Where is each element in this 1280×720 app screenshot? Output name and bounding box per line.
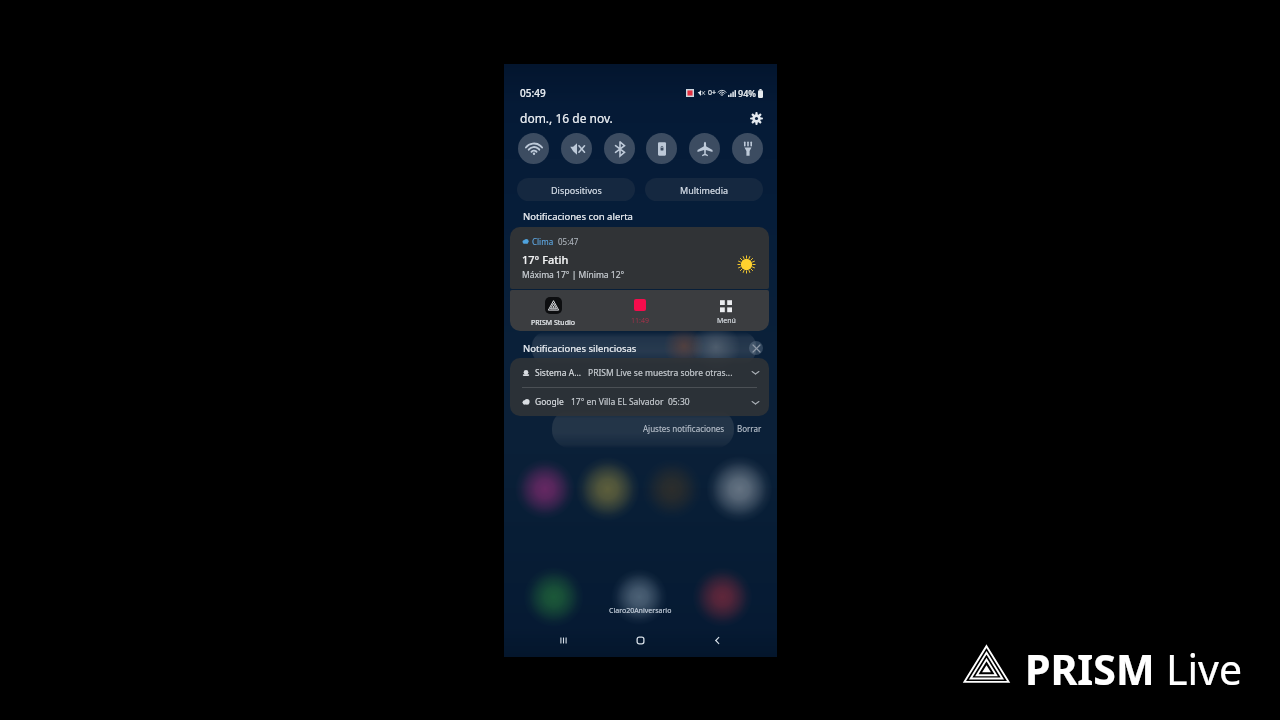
staticText: Notificaciones con alerta <box>523 210 633 223</box>
staticText: Multimedia <box>680 184 729 196</box>
button[interactable]: Settings <box>747 109 765 127</box>
button[interactable]: Sound off <box>561 133 592 164</box>
button[interactable]: Rotation lock <box>646 133 677 164</box>
button[interactable]: Google <box>522 388 760 416</box>
staticText: Máxima 17° | Mínima 12° <box>522 269 625 281</box>
button[interactable]: Back <box>679 627 756 653</box>
button[interactable]: Wi-Fi <box>518 133 549 164</box>
button[interactable]: Borrar <box>735 421 764 436</box>
staticText: Notificaciones silenciosas <box>523 342 637 355</box>
staticText: Borrar <box>737 423 762 434</box>
button[interactable]: Airplane mode <box>689 133 720 164</box>
staticText: 11:49 <box>631 316 649 326</box>
staticText: Sistema A... <box>535 367 581 379</box>
button[interactable]: Home <box>602 627 679 653</box>
staticText: PRISM <box>1025 641 1155 687</box>
staticText: Claro20Aniversario <box>609 606 672 616</box>
staticText: 17° en Villa EL Salvador 05:30 <box>571 396 690 408</box>
staticText: 05:47 <box>558 236 579 247</box>
staticText: Ajustes notificaciones <box>643 423 725 434</box>
staticText: 94% <box>738 87 756 99</box>
button[interactable]: Flashlight <box>732 133 763 164</box>
button[interactable]: Recents <box>525 627 602 653</box>
staticText: Clima <box>532 236 554 247</box>
staticText: Live <box>1166 641 1243 687</box>
button[interactable]: Bluetooth <box>604 133 635 164</box>
staticText: Google <box>535 396 564 408</box>
button[interactable]: Clima <box>510 227 769 289</box>
button[interactable]: Multimedia <box>645 178 763 201</box>
staticText: PRISM Live se muestra sobre otras... <box>588 367 733 379</box>
button[interactable]: PRISM Studio <box>510 293 597 331</box>
button[interactable]: Menú <box>683 293 769 331</box>
button[interactable]: Ajustes notificaciones <box>641 421 727 436</box>
button[interactable]: Sistema A... <box>522 358 760 387</box>
button[interactable]: Stop recording <box>597 293 683 331</box>
staticText: 05:49 <box>520 86 546 100</box>
button[interactable]: Dispositivos <box>517 178 635 201</box>
staticText: dom., 16 de nov. <box>520 110 613 126</box>
staticText: Menú <box>717 316 736 326</box>
staticText: 0+ <box>708 88 717 98</box>
staticText: 17° Fatih <box>522 252 569 267</box>
button[interactable]: Clear all notifications <box>749 341 763 355</box>
staticText: PRISM Studio <box>531 318 576 328</box>
staticText: Dispositivos <box>551 184 602 196</box>
